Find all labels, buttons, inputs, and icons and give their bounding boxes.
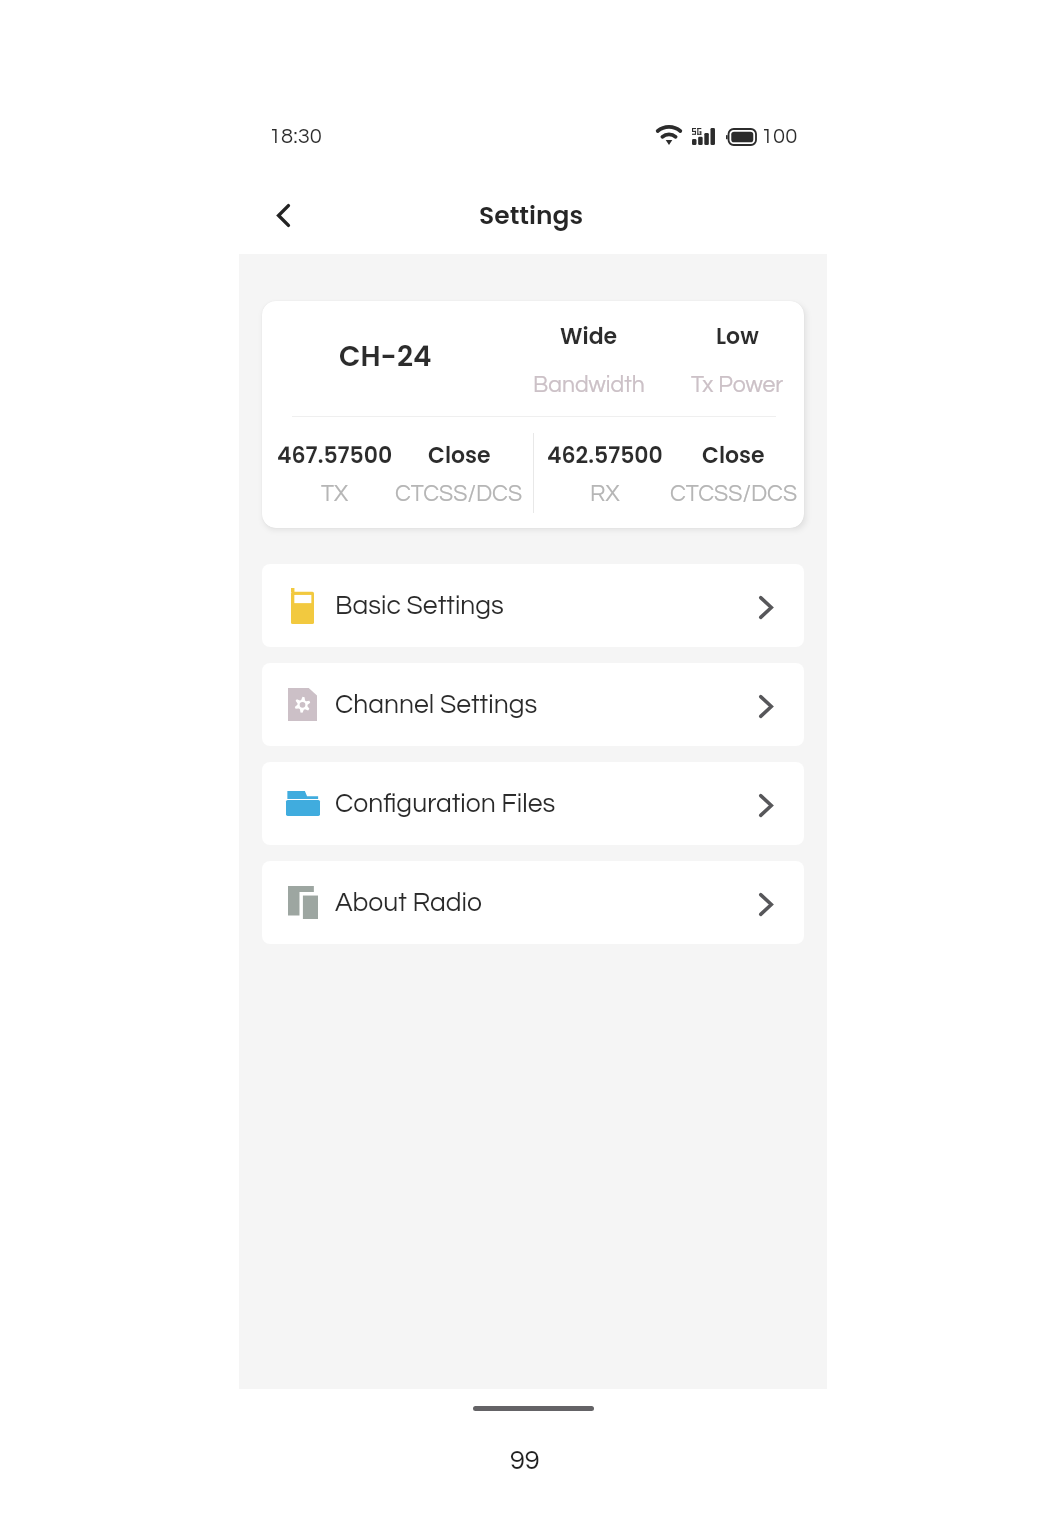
button[interactable]: Channel Settings bbox=[262, 663, 804, 746]
button[interactable]: Basic Settings bbox=[262, 564, 804, 647]
staticText: RX bbox=[590, 482, 620, 506]
staticText: CTCSS/DCS bbox=[395, 482, 523, 506]
staticText: Bandwidth bbox=[533, 373, 645, 397]
staticText: Wide bbox=[560, 321, 618, 352]
staticText: CH-24 bbox=[339, 337, 432, 376]
staticText: 99 bbox=[510, 1447, 540, 1475]
staticText: Close bbox=[702, 440, 765, 471]
staticText: TX bbox=[321, 482, 349, 506]
button[interactable]: About Radio bbox=[262, 861, 804, 944]
staticText: 467.57500 bbox=[277, 440, 393, 471]
staticText: Low bbox=[716, 321, 759, 352]
staticText: Close bbox=[428, 440, 491, 471]
staticText: 100 bbox=[761, 125, 798, 148]
button[interactable]: Configuration Files bbox=[262, 762, 804, 845]
staticText: Basic Settings bbox=[335, 592, 504, 619]
staticText: Tx Power bbox=[691, 373, 784, 397]
button[interactable]: Back bbox=[255, 187, 311, 243]
staticText: Configuration Files bbox=[335, 790, 556, 817]
staticText: Channel Settings bbox=[335, 691, 538, 718]
staticText: CTCSS/DCS bbox=[670, 482, 798, 506]
staticText: Settings bbox=[479, 198, 584, 233]
staticText: 18:30 bbox=[269, 125, 322, 148]
staticText: About Radio bbox=[335, 889, 482, 916]
staticText: 462.57500 bbox=[547, 440, 663, 471]
